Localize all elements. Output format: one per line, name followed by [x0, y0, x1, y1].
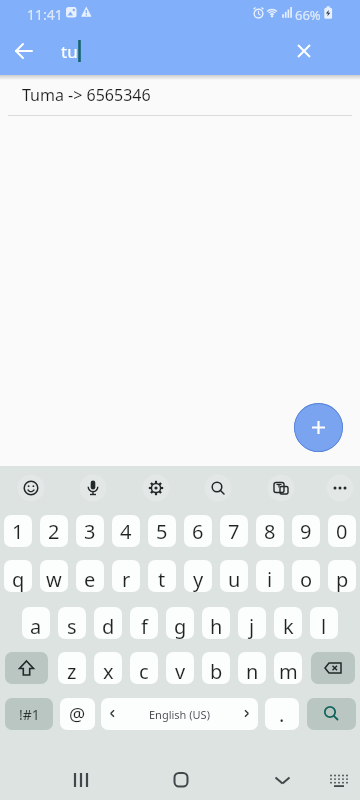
staticText: z: [67, 658, 77, 684]
staticText: x: [103, 658, 114, 684]
staticText: j: [249, 613, 255, 639]
staticText: k: [283, 613, 294, 639]
button[interactable]: [198, 468, 238, 508]
button[interactable]: 6: [184, 515, 212, 547]
button[interactable]: j: [238, 607, 266, 639]
staticText: 2: [48, 518, 60, 545]
button[interactable]: 8: [256, 515, 284, 547]
staticText: r: [122, 566, 131, 592]
button[interactable]: h: [202, 607, 230, 639]
button[interactable]: Tuma -> 6565346: [0, 75, 360, 115]
button[interactable]: b: [202, 652, 230, 684]
button[interactable]: v: [166, 652, 194, 684]
button[interactable]: [263, 761, 301, 799]
staticText: y: [193, 566, 204, 592]
staticText: g: [174, 613, 187, 639]
button[interactable]: [136, 468, 176, 508]
staticText: @: [69, 702, 86, 727]
button[interactable]: g: [166, 607, 194, 639]
staticText: a: [30, 613, 42, 639]
staticText: tu: [61, 40, 78, 63]
staticText: 0: [336, 518, 348, 545]
staticText: .: [279, 701, 285, 728]
staticText: English (US): [149, 707, 210, 722]
staticText: 6: [192, 518, 204, 545]
button[interactable]: i: [256, 560, 284, 592]
button[interactable]: q: [4, 560, 32, 592]
button[interactable]: k: [274, 607, 302, 639]
button[interactable]: .: [265, 698, 299, 730]
staticText: t: [158, 566, 166, 592]
staticText: f: [141, 613, 148, 639]
button[interactable]: w: [40, 560, 68, 592]
button[interactable]: 7: [220, 515, 248, 547]
button[interactable]: e: [76, 560, 104, 592]
staticText: q: [12, 566, 25, 592]
button[interactable]: n: [238, 652, 266, 684]
staticText: o: [300, 566, 313, 592]
button[interactable]: x: [94, 652, 122, 684]
button[interactable]: 4: [112, 515, 140, 547]
button[interactable]: [162, 761, 200, 799]
button[interactable]: [307, 698, 356, 730]
button[interactable]: a: [22, 607, 50, 639]
button[interactable]: 5: [148, 515, 176, 547]
staticText: m: [279, 658, 298, 684]
button[interactable]: [261, 468, 301, 508]
button[interactable]: t: [148, 560, 176, 592]
button[interactable]: r: [112, 560, 140, 592]
staticText: n: [246, 658, 259, 684]
staticText: e: [84, 566, 96, 592]
button[interactable]: c: [130, 652, 158, 684]
button[interactable]: s: [58, 607, 86, 639]
staticText: Tuma -> 6565346: [22, 84, 151, 106]
button[interactable]: u: [220, 560, 248, 592]
staticText: 9: [300, 518, 312, 545]
button[interactable]: [5, 652, 48, 684]
staticText: w: [46, 566, 62, 592]
button[interactable]: [294, 403, 343, 452]
button[interactable]: [288, 35, 320, 67]
button[interactable]: 0: [328, 515, 356, 547]
staticText: 4: [120, 518, 132, 545]
staticText: d: [102, 613, 115, 639]
button[interactable]: [11, 468, 51, 508]
staticText: 11:41: [27, 5, 63, 24]
button[interactable]: d: [94, 607, 122, 639]
staticText: s: [67, 613, 77, 639]
staticText: b: [210, 658, 223, 684]
staticText: 3: [84, 518, 96, 545]
button[interactable]: [320, 468, 360, 508]
staticText: 1: [12, 518, 24, 545]
staticText: 8: [264, 518, 276, 545]
staticText: c: [139, 658, 149, 684]
button[interactable]: 3: [76, 515, 104, 547]
button[interactable]: 9: [292, 515, 320, 547]
button[interactable]: m: [274, 652, 302, 684]
staticText: l: [321, 613, 327, 639]
staticText: 66%: [295, 6, 321, 24]
staticText: h: [210, 613, 223, 639]
button[interactable]: !#1: [5, 698, 53, 730]
button[interactable]: o: [292, 560, 320, 592]
button[interactable]: 1: [4, 515, 32, 547]
button[interactable]: p: [328, 560, 356, 592]
button[interactable]: [73, 468, 113, 508]
staticText: p: [336, 566, 349, 592]
button[interactable]: y: [184, 560, 212, 592]
button[interactable]: @: [60, 698, 95, 730]
button[interactable]: l: [310, 607, 338, 639]
staticText: !#1: [19, 705, 40, 724]
staticText: i: [267, 566, 273, 592]
staticText: v: [175, 658, 186, 684]
button[interactable]: [322, 763, 356, 797]
button[interactable]: English (US): [101, 698, 258, 730]
button[interactable]: f: [130, 607, 158, 639]
staticText: 5: [156, 518, 168, 545]
staticText: 7: [228, 518, 240, 545]
button[interactable]: z: [58, 652, 86, 684]
button[interactable]: [8, 35, 40, 67]
button[interactable]: 2: [40, 515, 68, 547]
button[interactable]: [62, 761, 100, 799]
button[interactable]: [311, 652, 355, 684]
